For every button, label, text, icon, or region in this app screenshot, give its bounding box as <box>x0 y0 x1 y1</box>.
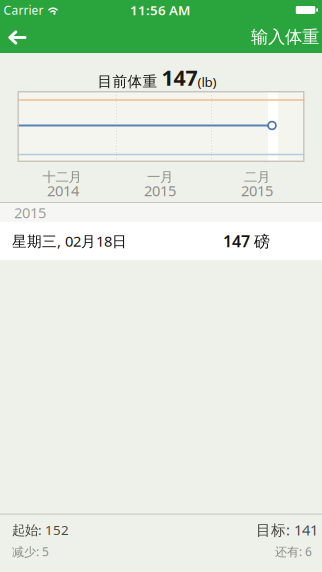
staticText: 减少: 5 <box>12 544 49 559</box>
staticText: 2015 <box>14 203 46 222</box>
button[interactable]: Back <box>0 29 26 44</box>
staticText: 目标: 141 <box>256 520 318 540</box>
staticText: 2015 <box>241 181 273 200</box>
staticText: 147 磅 <box>223 230 270 252</box>
staticText: 二月 <box>244 169 270 185</box>
staticText: 星期三, 02月18日 <box>12 231 127 251</box>
button[interactable]: 输入体重 <box>251 25 322 48</box>
staticText: 十二月 <box>42 169 81 185</box>
staticText: 输入体重 <box>251 26 319 48</box>
staticText: Carrier <box>3 2 43 18</box>
staticText: 还有: 6 <box>275 544 312 559</box>
button[interactable]: 星期三, 02月18日 <box>0 222 322 260</box>
staticText: 2014 <box>47 181 79 200</box>
staticText: 起始: 152 <box>12 521 69 539</box>
staticText: 2015 <box>144 181 176 200</box>
staticText: 目前体重 147(lb) <box>97 63 216 92</box>
staticText: 11:56 AM <box>130 1 190 19</box>
staticText: 一月 <box>147 169 173 185</box>
